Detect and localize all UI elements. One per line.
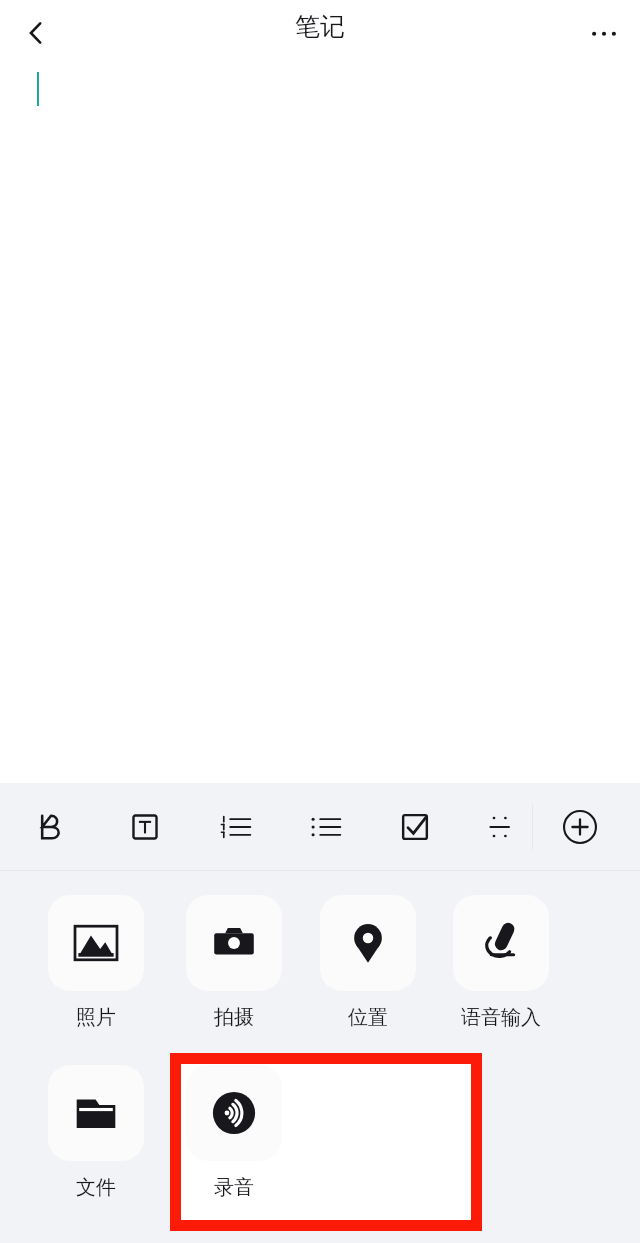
button[interactable]: Bulleted list <box>280 783 370 871</box>
button[interactable]: 照片 <box>48 895 144 1030</box>
button[interactable]: More options <box>576 5 632 61</box>
staticText: 照片 <box>76 1005 116 1030</box>
button[interactable]: Divider <box>460 783 540 871</box>
button[interactable]: Add <box>540 783 620 871</box>
button[interactable]: Numbered list <box>190 783 280 871</box>
staticText: 文件 <box>76 1175 116 1200</box>
button[interactable]: 录音 <box>186 1065 282 1200</box>
staticText: 位置 <box>348 1005 388 1030</box>
button[interactable]: Text style <box>100 783 190 871</box>
staticText: 笔记 <box>295 11 345 42</box>
staticText: 语音输入 <box>461 1005 541 1030</box>
button[interactable]: Back <box>8 5 64 61</box>
staticText: 拍摄 <box>214 1005 254 1030</box>
button[interactable]: 拍摄 <box>186 895 282 1030</box>
button[interactable]: Checklist <box>370 783 460 871</box>
button[interactable]: Bold <box>0 783 100 871</box>
button[interactable]: 文件 <box>48 1065 144 1200</box>
button[interactable]: 位置 <box>320 895 416 1030</box>
button[interactable]: 语音输入 <box>453 895 549 1030</box>
staticText: 录音 <box>214 1175 254 1200</box>
